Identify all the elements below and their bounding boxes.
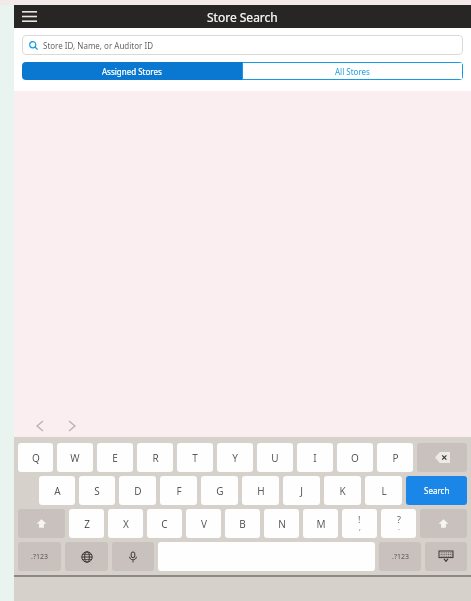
- staticText: E: [112, 451, 118, 465]
- button[interactable]: Change language: [65, 542, 108, 571]
- staticText: !: [358, 513, 361, 525]
- button[interactable]: J: [283, 476, 320, 505]
- staticText: R: [152, 451, 159, 465]
- staticText: F: [176, 484, 182, 498]
- staticText: N: [278, 517, 286, 531]
- button[interactable]: N: [264, 509, 299, 538]
- button[interactable]: T: [177, 443, 213, 472]
- button[interactable]: Previous: [32, 418, 48, 434]
- button[interactable]: U: [257, 443, 293, 472]
- button[interactable]: Menu: [14, 5, 44, 28]
- staticText: .: [398, 523, 400, 533]
- button[interactable]: Z: [69, 509, 104, 538]
- button[interactable]: Search: [406, 476, 467, 505]
- button[interactable]: D: [119, 476, 156, 505]
- staticText: Z: [84, 517, 90, 531]
- button[interactable]: C: [147, 509, 182, 538]
- button[interactable]: !: [342, 509, 377, 538]
- staticText: H: [257, 484, 265, 498]
- staticText: D: [134, 484, 142, 498]
- button[interactable]: O: [337, 443, 373, 472]
- button[interactable]: R: [137, 443, 173, 472]
- staticText: I: [313, 451, 317, 465]
- button[interactable]: L: [365, 476, 402, 505]
- staticText: .?123: [31, 552, 48, 562]
- staticText: C: [161, 517, 168, 531]
- staticText: Assigned Stores: [102, 66, 162, 77]
- button[interactable]: All Stores: [242, 62, 463, 80]
- staticText: Store ID, Name, or Auditor ID: [43, 40, 154, 51]
- button[interactable]: Backspace: [417, 443, 467, 472]
- button[interactable]: M: [303, 509, 338, 538]
- staticText: P: [392, 451, 399, 465]
- staticText: W: [70, 451, 80, 465]
- staticText: G: [216, 484, 224, 498]
- staticText: All Stores: [335, 66, 370, 77]
- button[interactable]: Shift: [420, 509, 467, 538]
- staticText: Y: [232, 451, 238, 465]
- staticText: Store Search: [207, 9, 278, 25]
- button[interactable]: V: [186, 509, 221, 538]
- staticText: ?: [397, 513, 401, 525]
- button[interactable]: G: [201, 476, 238, 505]
- staticText: J: [300, 484, 303, 498]
- staticText: B: [239, 517, 246, 531]
- button[interactable]: Q: [18, 443, 53, 472]
- button[interactable]: I: [297, 443, 333, 472]
- staticText: T: [192, 451, 198, 465]
- staticText: L: [381, 484, 387, 498]
- button[interactable]: P: [377, 443, 413, 472]
- staticText: S: [94, 484, 100, 498]
- button[interactable]: Y: [217, 443, 253, 472]
- staticText: O: [351, 451, 359, 465]
- button[interactable]: ?: [381, 509, 416, 538]
- button[interactable]: F: [160, 476, 197, 505]
- button[interactable]: K: [324, 476, 361, 505]
- button[interactable]: Shift: [18, 509, 65, 538]
- button[interactable]: Voice input: [112, 542, 154, 571]
- button[interactable]: Store ID, Name, or Auditor ID: [22, 35, 463, 55]
- button[interactable]: S: [79, 476, 115, 505]
- staticText: M: [316, 517, 326, 531]
- button[interactable]: W: [57, 443, 93, 472]
- staticText: .?123: [392, 552, 409, 562]
- button[interactable]: E: [97, 443, 133, 472]
- button[interactable]: Assigned Stores: [22, 62, 242, 80]
- staticText: U: [271, 451, 279, 465]
- staticText: K: [339, 484, 346, 498]
- staticText: X: [123, 517, 129, 531]
- staticText: A: [54, 484, 61, 498]
- staticText: Search: [424, 485, 450, 496]
- staticText: ,: [359, 523, 361, 533]
- button[interactable]: Numbers: [18, 542, 61, 571]
- button[interactable]: A: [39, 476, 75, 505]
- button[interactable]: Numbers: [379, 542, 421, 571]
- button[interactable]: H: [242, 476, 279, 505]
- staticText: Q: [32, 451, 40, 465]
- button[interactable]: Next: [64, 418, 80, 434]
- button[interactable]: X: [108, 509, 143, 538]
- button[interactable]: B: [225, 509, 260, 538]
- button[interactable]: Hide keyboard: [425, 542, 467, 571]
- staticText: V: [201, 517, 207, 531]
